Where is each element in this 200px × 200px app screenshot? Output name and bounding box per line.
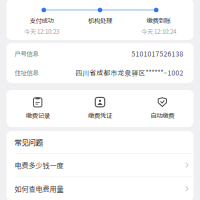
staticText: 自动缴费	[150, 111, 174, 120]
staticText: 如何查电费用量	[14, 184, 63, 194]
button[interactable]: 如何查电费用量	[6, 177, 193, 200]
staticText: 常见问题	[14, 137, 42, 147]
staticText: 今天 12:10:23	[24, 27, 59, 36]
button[interactable]: 缴费记录	[6, 90, 69, 127]
staticText: 缴费凭证	[88, 111, 112, 120]
staticText: 电费多少钱一度	[14, 160, 63, 170]
staticText: 机构处理	[88, 15, 112, 25]
staticText: 今天 12:10:24	[141, 27, 176, 36]
staticText: 四川省成都市龙泉驿区******–1002	[75, 68, 183, 77]
button[interactable]: 电费多少钱一度	[6, 154, 193, 177]
staticText: 5101017526138	[131, 49, 183, 58]
button[interactable]: 自动缴费	[131, 90, 193, 127]
staticText: 缴费记录	[26, 111, 50, 120]
staticText: 住址信息	[14, 68, 38, 77]
button[interactable]: 缴费凭证	[69, 90, 131, 127]
staticText: 缴费到账	[146, 15, 170, 25]
staticText: 支付成功	[29, 15, 53, 25]
staticText: 户号信息	[14, 49, 38, 58]
